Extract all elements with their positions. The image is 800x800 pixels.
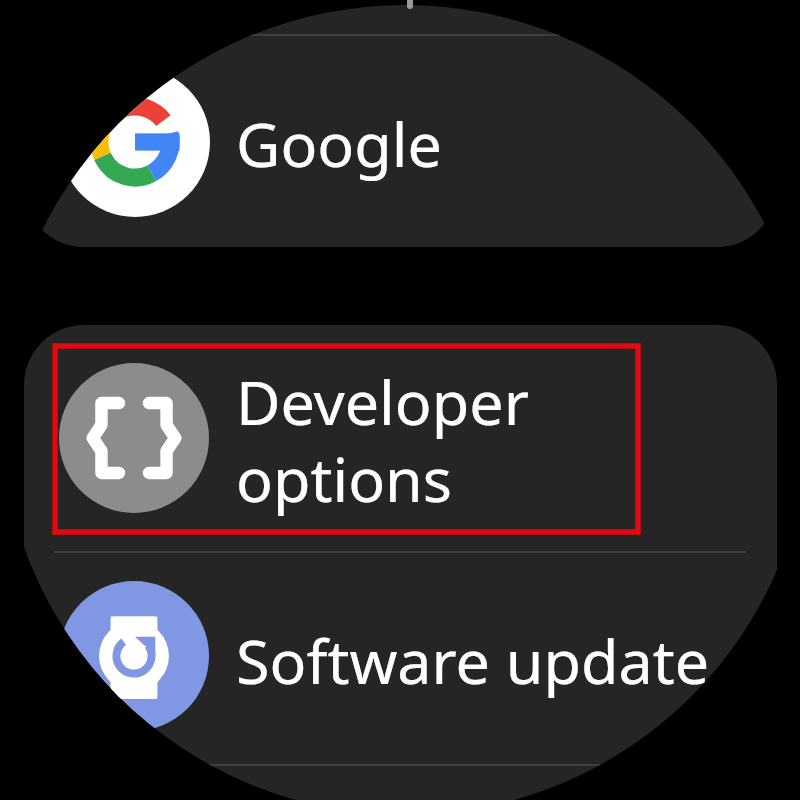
button[interactable]: Software update xyxy=(24,553,777,764)
staticText: Software update xyxy=(236,619,710,702)
staticText: Google xyxy=(236,102,442,185)
staticText: Developer options xyxy=(236,360,536,520)
button[interactable]: Google xyxy=(24,36,777,247)
button[interactable]: Developer options xyxy=(24,325,777,552)
